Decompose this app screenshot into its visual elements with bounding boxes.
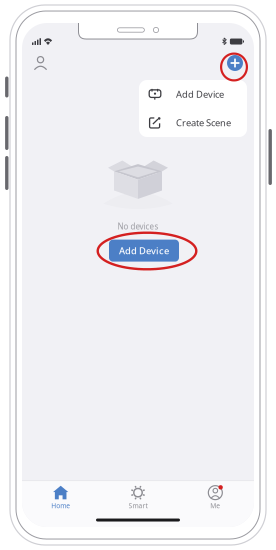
staticText: No devices bbox=[117, 221, 158, 232]
staticText: Smart bbox=[128, 501, 147, 510]
button[interactable]: Profile bbox=[28, 50, 53, 75]
button[interactable]: Add Device bbox=[139, 80, 247, 108]
button[interactable]: Add bbox=[222, 50, 248, 76]
staticText: Home bbox=[51, 501, 70, 510]
staticText: Create Scene bbox=[176, 117, 231, 129]
button[interactable]: Create Scene bbox=[139, 108, 247, 137]
button[interactable]: Smart bbox=[99, 481, 177, 513]
staticText: Add Device bbox=[119, 244, 169, 257]
button[interactable]: Home bbox=[22, 481, 99, 513]
button[interactable]: Me bbox=[177, 481, 254, 513]
staticText: Me bbox=[210, 501, 220, 510]
button[interactable]: Add Device bbox=[109, 240, 179, 262]
staticText: Add Device bbox=[176, 88, 224, 100]
